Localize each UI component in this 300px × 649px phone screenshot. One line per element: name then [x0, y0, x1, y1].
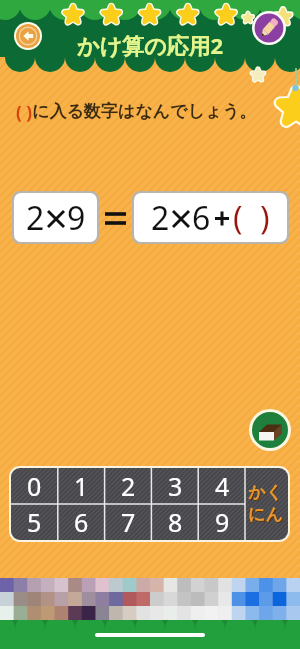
- staticText: 2: [121, 469, 136, 503]
- staticText: 1: [74, 469, 89, 503]
- staticText: ): [260, 196, 270, 240]
- staticText: に入る数字はなんでしょう。: [32, 101, 257, 122]
- button[interactable]: 3: [152, 468, 199, 504]
- button[interactable]: 0: [11, 468, 58, 504]
- button[interactable]: 5: [11, 504, 58, 540]
- button[interactable]: 7: [105, 504, 152, 540]
- staticText: かく にん: [248, 482, 283, 525]
- button[interactable]: 6: [58, 504, 105, 540]
- staticText: 9: [215, 505, 230, 539]
- staticText: 9: [67, 196, 86, 240]
- staticText: かく にん: [249, 483, 284, 526]
- button[interactable]: 1: [58, 468, 105, 504]
- staticText: 8: [168, 505, 183, 539]
- button[interactable]: 8: [152, 504, 199, 540]
- staticText: 6: [192, 196, 211, 240]
- staticText: 0: [27, 469, 42, 503]
- button[interactable]: 2: [105, 468, 152, 504]
- button[interactable]: 4: [199, 468, 246, 504]
- button[interactable]: Draw: [252, 11, 286, 45]
- staticText: 3: [168, 469, 183, 503]
- button[interactable]: Eraser: [249, 409, 291, 451]
- staticText: ( ): [16, 101, 32, 124]
- staticText: 4: [215, 469, 230, 503]
- button[interactable]: 9: [199, 504, 246, 540]
- staticText: (: [233, 196, 243, 240]
- button[interactable]: かく にん: [245, 468, 288, 540]
- staticText: 2: [151, 196, 170, 240]
- button[interactable]: Back: [14, 22, 42, 50]
- staticText: 6: [74, 505, 89, 539]
- staticText: 7: [121, 505, 136, 539]
- staticText: 5: [27, 505, 42, 539]
- staticText: 2: [26, 196, 45, 240]
- staticText: かけ算の応用2: [77, 30, 224, 60]
